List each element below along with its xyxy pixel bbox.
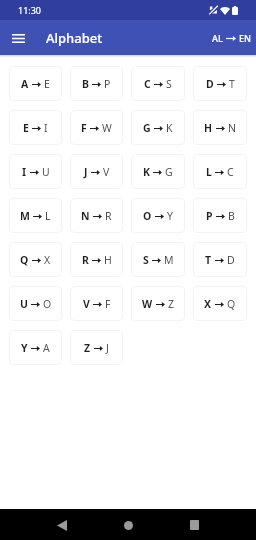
- staticText: K: [143, 165, 150, 179]
- staticText: I: [44, 121, 48, 135]
- staticText: O: [43, 297, 52, 311]
- staticText: U: [20, 297, 28, 311]
- button[interactable]: AL: [210, 32, 253, 44]
- staticText: E: [23, 121, 29, 135]
- button[interactable]: L: [194, 155, 246, 188]
- staticText: H: [104, 253, 112, 267]
- staticText: N: [81, 209, 90, 223]
- button[interactable]: K: [132, 155, 184, 188]
- staticText: L: [45, 209, 51, 223]
- staticText: O: [143, 209, 152, 223]
- staticText: A: [43, 341, 50, 355]
- staticText: M: [20, 209, 30, 223]
- button[interactable]: I: [10, 155, 61, 188]
- staticText: Q: [20, 253, 29, 267]
- staticText: W: [142, 297, 153, 311]
- staticText: T: [205, 253, 212, 267]
- staticText: F: [81, 121, 87, 135]
- button[interactable]: F: [71, 111, 122, 144]
- staticText: Z: [84, 341, 91, 355]
- staticText: AL: [212, 32, 223, 44]
- button[interactable]: O: [132, 199, 184, 232]
- staticText: D: [206, 77, 214, 91]
- staticText: L: [206, 165, 212, 179]
- staticText: A: [21, 77, 29, 91]
- staticText: R: [105, 209, 112, 223]
- staticText: J: [106, 341, 109, 355]
- button[interactable]: H: [194, 111, 246, 144]
- staticText: G: [165, 165, 173, 179]
- staticText: V: [83, 297, 90, 311]
- button[interactable]: X: [194, 287, 246, 320]
- staticText: X: [204, 297, 212, 311]
- staticText: T: [229, 77, 235, 91]
- button[interactable]: J: [71, 155, 122, 188]
- staticText: D: [227, 253, 235, 267]
- button[interactable]: Z: [71, 331, 122, 364]
- staticText: R: [82, 253, 89, 267]
- staticText: K: [166, 121, 173, 135]
- button[interactable]: Recent apps: [181, 512, 207, 538]
- button[interactable]: B: [71, 67, 122, 100]
- staticText: EN: [239, 32, 251, 44]
- button[interactable]: P: [194, 199, 246, 232]
- button[interactable]: M: [10, 199, 61, 232]
- staticText: W: [102, 121, 112, 135]
- staticText: Z: [168, 297, 175, 311]
- staticText: H: [204, 121, 213, 135]
- staticText: Y: [167, 209, 173, 223]
- button[interactable]: W: [132, 287, 184, 320]
- staticText: N: [228, 121, 236, 135]
- staticText: G: [143, 121, 151, 135]
- staticText: Y: [21, 341, 28, 355]
- staticText: C: [227, 165, 234, 179]
- staticText: E: [44, 77, 50, 91]
- staticText: X: [44, 253, 51, 267]
- button[interactable]: T: [194, 243, 246, 276]
- button[interactable]: Back: [49, 512, 75, 538]
- button[interactable]: V: [71, 287, 122, 320]
- button[interactable]: N: [71, 199, 122, 232]
- staticText: B: [82, 77, 89, 91]
- staticText: I: [22, 165, 27, 179]
- staticText: C: [144, 77, 151, 91]
- button[interactable]: U: [10, 287, 61, 320]
- staticText: B: [228, 209, 235, 223]
- staticText: P: [206, 209, 213, 223]
- staticText: Q: [227, 297, 236, 311]
- staticText: S: [166, 77, 172, 91]
- button[interactable]: C: [132, 67, 184, 100]
- button[interactable]: Open navigation menu: [6, 26, 30, 50]
- button[interactable]: Q: [10, 243, 61, 276]
- staticText: V: [103, 165, 110, 179]
- staticText: U: [42, 165, 50, 179]
- button[interactable]: E: [10, 111, 61, 144]
- staticText: M: [164, 253, 174, 267]
- staticText: J: [84, 165, 88, 179]
- button[interactable]: G: [132, 111, 184, 144]
- button[interactable]: Home: [115, 512, 141, 538]
- staticText: P: [104, 77, 111, 91]
- staticText: 11:30: [18, 4, 42, 16]
- button[interactable]: A: [10, 67, 61, 100]
- staticText: Alphabet: [46, 29, 103, 47]
- button[interactable]: R: [71, 243, 122, 276]
- button[interactable]: Y: [10, 331, 61, 364]
- staticText: S: [143, 253, 149, 267]
- button[interactable]: D: [194, 67, 246, 100]
- staticText: F: [105, 297, 111, 311]
- button[interactable]: S: [132, 243, 184, 276]
